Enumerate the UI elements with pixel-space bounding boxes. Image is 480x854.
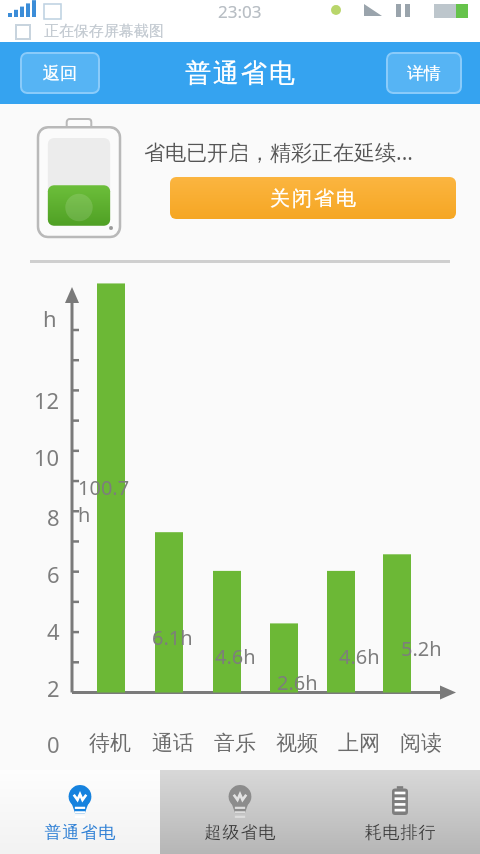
staticText: 4 bbox=[47, 616, 60, 646]
staticText: 5.2h bbox=[401, 635, 442, 662]
button[interactable]: 关闭省电 bbox=[170, 177, 456, 219]
staticText: 阅读 bbox=[400, 730, 442, 756]
staticText: 12 bbox=[34, 385, 60, 415]
button[interactable]: 超级省电 bbox=[160, 770, 320, 854]
staticText: 耗电排行 bbox=[364, 822, 436, 843]
staticText: 通话 bbox=[152, 730, 194, 756]
staticText: 关闭省电 bbox=[269, 186, 357, 211]
staticText: 23:03 bbox=[218, 0, 262, 23]
staticText: 普通省电 bbox=[44, 822, 116, 843]
staticText: 上网 bbox=[338, 730, 380, 756]
staticText: 6 bbox=[47, 559, 60, 589]
button[interactable]: 耗电排行 bbox=[320, 770, 480, 854]
staticText: 正在保存屏幕截图 bbox=[44, 22, 164, 41]
button[interactable]: 返回 bbox=[20, 52, 100, 94]
staticText: 超级省电 bbox=[204, 822, 276, 843]
staticText: 6.1h bbox=[152, 624, 193, 651]
staticText: 8 bbox=[47, 502, 60, 532]
staticText: 返回 bbox=[43, 63, 77, 84]
staticText: 0 bbox=[47, 729, 60, 759]
staticText: 2.6h bbox=[277, 669, 318, 696]
button[interactable]: 普通省电 bbox=[0, 770, 160, 854]
staticText: 详情 bbox=[407, 63, 441, 84]
staticText: 音乐 bbox=[214, 730, 256, 756]
staticText: 视频 bbox=[276, 730, 318, 756]
button[interactable]: 详情 bbox=[386, 52, 462, 94]
staticText: 4.6h bbox=[339, 643, 380, 670]
staticText: 10 bbox=[34, 442, 60, 472]
staticText: 100.7h bbox=[78, 474, 141, 528]
staticText: 省电已开启，精彩正在延续... bbox=[144, 138, 413, 167]
staticText: h bbox=[43, 303, 57, 333]
staticText: 4.6h bbox=[215, 643, 256, 670]
staticText: 2 bbox=[47, 673, 60, 703]
staticText: 普通省电 bbox=[184, 57, 296, 90]
staticText: 待机 bbox=[89, 730, 131, 756]
